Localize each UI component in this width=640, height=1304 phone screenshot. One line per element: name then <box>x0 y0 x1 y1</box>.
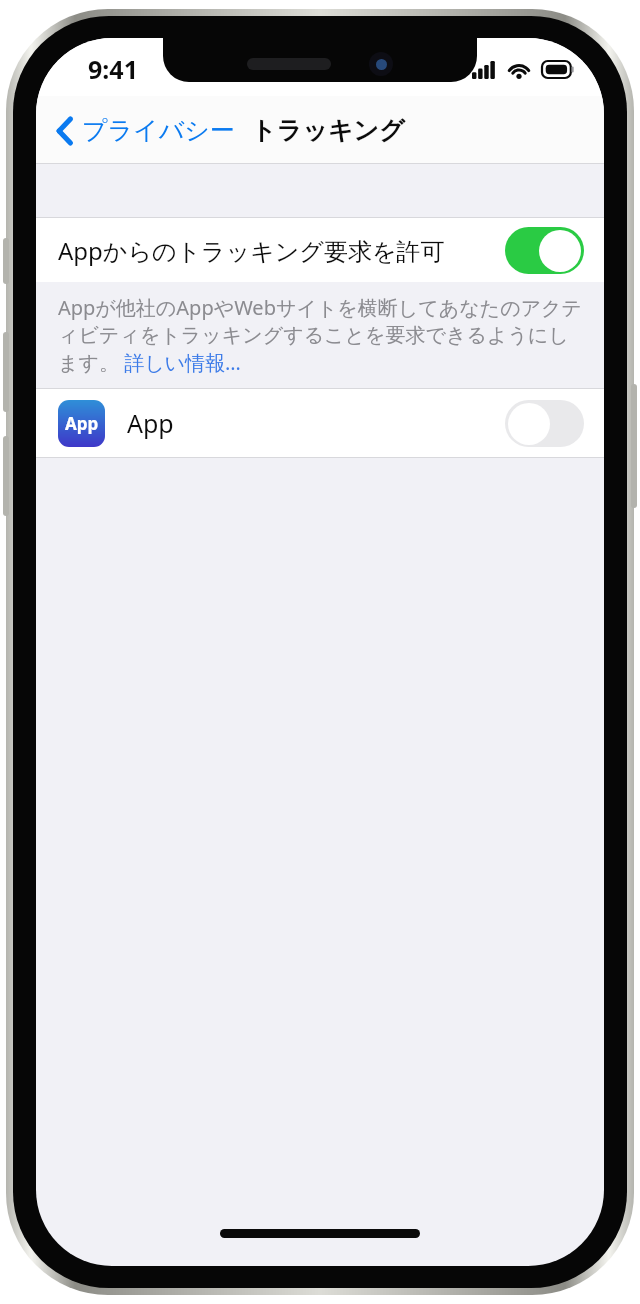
staticText: トラッキング <box>251 115 405 146</box>
button[interactable]: プライバシー <box>50 111 241 150</box>
button[interactable]: Off <box>505 400 584 447</box>
staticText: プライバシー <box>82 115 235 146</box>
staticText: Appが他社のAppやWebサイトを横断してあなたのアクティビティをトラッキング… <box>58 294 588 376</box>
staticText: App <box>127 406 174 440</box>
button[interactable]: On <box>505 227 584 274</box>
staticText: App <box>65 412 99 435</box>
staticText: Appからのトラッキング要求を許可 <box>58 234 445 267</box>
staticText: 9:41 <box>88 52 138 86</box>
button[interactable]: App <box>36 389 604 457</box>
button[interactable]: Appからのトラッキング要求を許可 <box>36 218 604 282</box>
